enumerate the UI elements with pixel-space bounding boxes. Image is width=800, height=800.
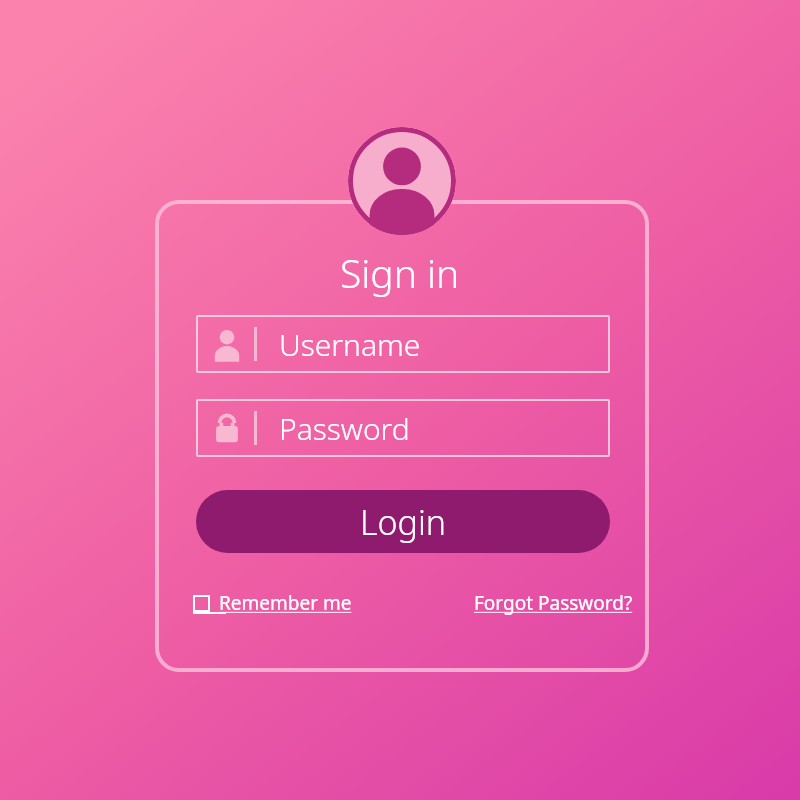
button[interactable]: Forgot Password?	[474, 588, 633, 618]
button[interactable]: Remember me	[193, 588, 352, 618]
button[interactable]: Username	[196, 315, 610, 373]
staticText: Sign in	[340, 246, 460, 299]
staticText: Username	[279, 324, 421, 365]
staticText: Password	[279, 408, 410, 449]
staticText: Login	[360, 499, 447, 545]
button[interactable]: Password	[196, 399, 610, 457]
button[interactable]: Login	[196, 490, 610, 553]
staticText: Remember me	[219, 590, 352, 616]
staticText: Forgot Password?	[474, 590, 633, 616]
other: Profile avatar	[348, 127, 456, 235]
